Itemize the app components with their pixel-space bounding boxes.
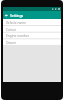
button[interactable]: Colour — [3, 26, 61, 33]
button[interactable]: Engine number — [3, 32, 61, 39]
button[interactable]: Vehicle name — [3, 19, 61, 26]
staticText: Owner — [6, 41, 17, 45]
staticText: Vehicle name — [6, 21, 26, 25]
staticText: Settings — [10, 13, 24, 18]
staticText: Colour — [6, 28, 16, 32]
button[interactable]: Owner — [3, 39, 61, 46]
staticText: Engine number — [6, 34, 30, 38]
button[interactable]: Back — [3, 11, 10, 19]
